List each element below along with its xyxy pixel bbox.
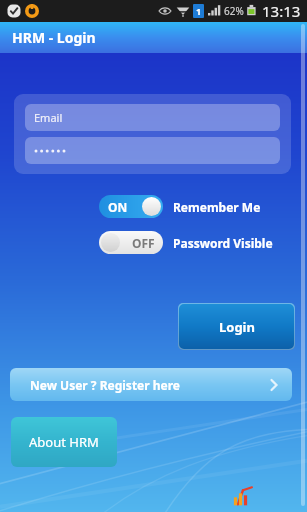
- button[interactable]: New User ? Register here: [10, 368, 292, 401]
- button[interactable]: [25, 137, 280, 164]
- button[interactable]: About HRM: [11, 417, 117, 467]
- staticText: 62%: [224, 4, 244, 18]
- button[interactable]: ON: [99, 195, 261, 218]
- button[interactable]: Login: [178, 303, 295, 350]
- staticText: About HRM: [29, 433, 99, 451]
- button[interactable]: OFF: [99, 231, 273, 254]
- button[interactable]: Email: [25, 104, 280, 131]
- staticText: Email: [34, 110, 63, 125]
- staticText: 13:13: [262, 1, 301, 21]
- staticText: New User ? Register here: [30, 377, 181, 393]
- staticText: Remember Me: [173, 199, 261, 215]
- staticText: 1: [196, 5, 202, 17]
- staticText: ON: [108, 199, 128, 215]
- staticText: HRM - Login: [12, 28, 96, 47]
- staticText: Login: [219, 318, 255, 336]
- staticText: Password Visible: [173, 235, 273, 251]
- staticText: OFF: [132, 235, 155, 251]
